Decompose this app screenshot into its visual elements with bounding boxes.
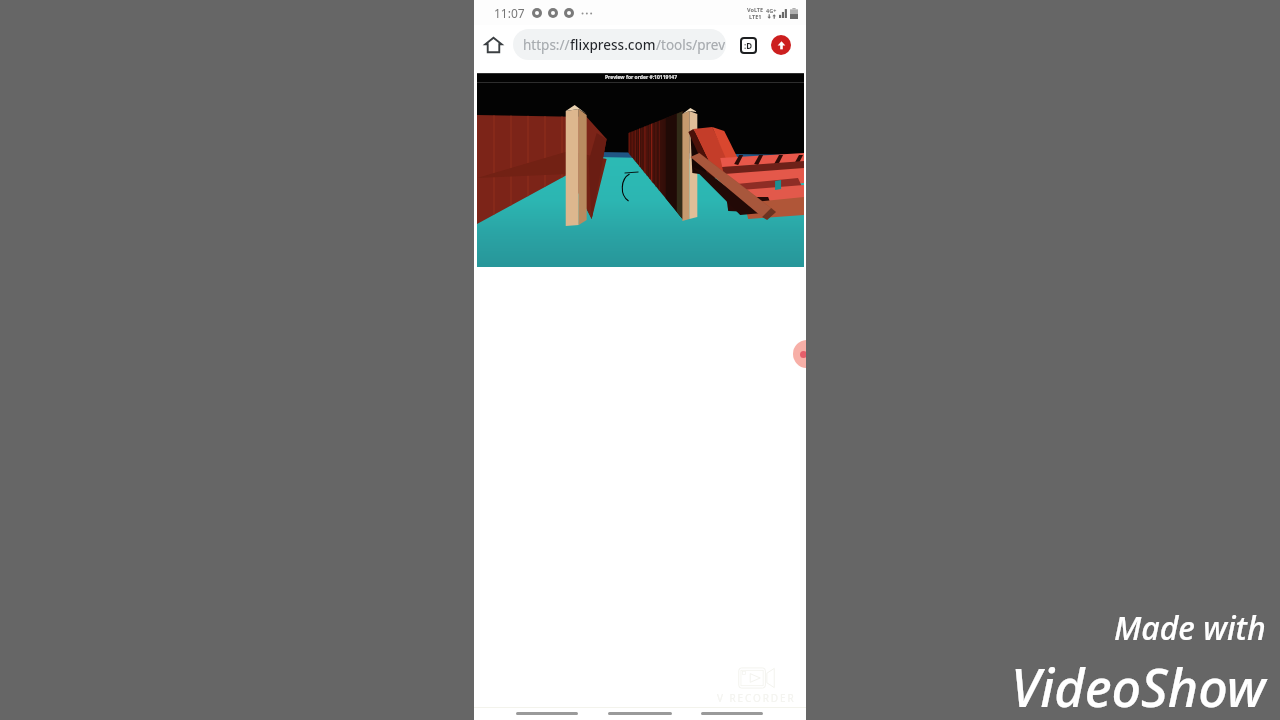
button[interactable]: https:// <box>513 29 726 60</box>
button[interactable]: Switch tabs <box>737 34 759 56</box>
staticText: Made with <box>1114 606 1266 650</box>
button[interactable]: Upload <box>771 35 791 55</box>
button[interactable]: Screen recorder <box>793 340 806 368</box>
staticText: 11:07 <box>494 5 525 21</box>
staticText: https:// <box>523 36 570 54</box>
button[interactable]: Navigation <box>511 707 583 719</box>
button[interactable]: Home page <box>480 32 506 58</box>
staticText: flixpress.com <box>570 36 656 54</box>
staticText: VideoShow <box>1011 651 1266 720</box>
button[interactable]: Navigation <box>696 707 768 719</box>
staticText: 4G+ <box>766 7 777 14</box>
staticText: Preview for order #:10119147 <box>605 74 677 81</box>
staticText: VoLTE <box>747 6 764 13</box>
button[interactable]: Navigation <box>603 707 677 719</box>
staticText: :D <box>744 40 753 51</box>
staticText: V RECORDER <box>717 691 796 705</box>
staticText: LTE1 <box>749 13 762 20</box>
staticText: /tools/prev <box>656 36 726 54</box>
